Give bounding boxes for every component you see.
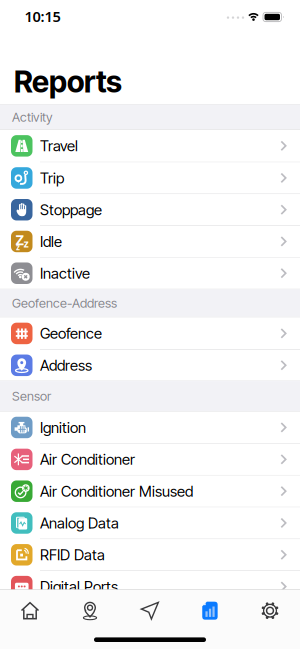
staticText: z xyxy=(23,236,28,250)
button[interactable]: Analog Data xyxy=(0,507,300,539)
staticText: Geofence-Address xyxy=(12,295,117,311)
staticText: Reports xyxy=(14,63,122,100)
staticText: Trip xyxy=(40,169,64,187)
button[interactable]: Digital Ports xyxy=(0,571,300,602)
button[interactable]: Reports xyxy=(180,591,240,631)
button[interactable]: Z xyxy=(0,226,300,257)
button[interactable]: Stoppage xyxy=(0,194,300,225)
staticText: Z xyxy=(16,230,24,249)
button[interactable]: Geofence xyxy=(0,318,300,349)
button[interactable]: Home xyxy=(0,591,60,631)
staticText: RFID Data xyxy=(40,546,105,564)
button[interactable]: Ignition xyxy=(0,412,300,443)
staticText: Inactive xyxy=(40,264,90,282)
staticText: Geofence xyxy=(40,324,102,342)
staticText: Air Conditioner xyxy=(40,450,135,468)
button[interactable]: Tracking xyxy=(60,591,120,631)
button[interactable]: Inactive xyxy=(0,258,300,289)
button[interactable]: Settings xyxy=(240,591,300,631)
staticText: Address xyxy=(40,356,92,374)
button[interactable]: Trip xyxy=(0,162,300,193)
button[interactable]: Air Conditioner Misused xyxy=(0,476,300,507)
staticText: Sensor xyxy=(12,388,51,404)
button[interactable]: Travel xyxy=(0,130,300,162)
staticText: Air Conditioner Misused xyxy=(40,482,193,500)
button[interactable]: Navigate xyxy=(120,591,180,631)
staticText: Analog Data xyxy=(40,514,119,532)
button[interactable]: Air Conditioner xyxy=(0,444,300,475)
staticText: Idle xyxy=(40,232,62,250)
button[interactable]: RFID Data xyxy=(0,539,300,570)
staticText: Activity xyxy=(12,109,53,125)
button[interactable]: Address xyxy=(0,350,300,381)
staticText: Digital Ports xyxy=(40,578,118,596)
staticText: Stoppage xyxy=(40,201,102,219)
staticText: Ignition xyxy=(40,418,86,436)
staticText: Travel xyxy=(40,137,78,155)
staticText: z xyxy=(16,242,20,252)
staticText: 10:15 xyxy=(24,6,60,26)
